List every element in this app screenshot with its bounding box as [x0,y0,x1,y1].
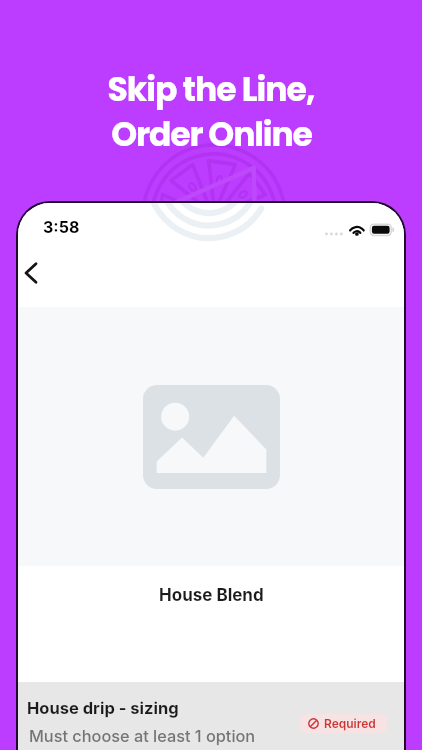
staticText: Skip the Line, [107,66,315,112]
staticText: Required [324,716,376,731]
staticText: House drip - sizing [27,698,179,718]
staticText: 3:58 [43,217,80,236]
button[interactable]: Back [18,251,53,295]
staticText: Must choose at least 1 option [29,726,256,746]
staticText: Order Online [111,111,312,157]
staticText: House Blend [159,585,264,606]
button[interactable]: Required [300,714,387,733]
